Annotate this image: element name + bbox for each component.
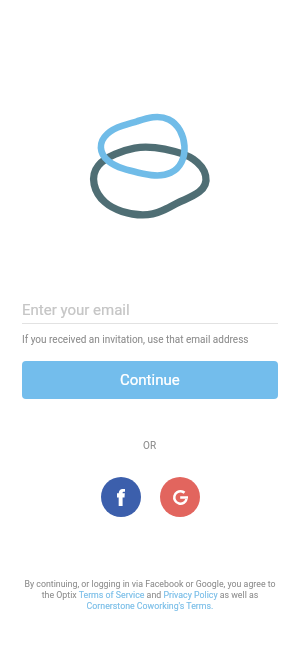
button[interactable]: Enter your email xyxy=(22,297,278,323)
staticText: By continuing, or logging in via Faceboo… xyxy=(21,579,279,611)
button[interactable]: By continuing, or logging in via Faceboo… xyxy=(21,579,279,611)
staticText: Enter your email xyxy=(22,301,130,319)
button[interactable]: Continue with Google xyxy=(160,477,200,517)
button[interactable]: Continue xyxy=(22,361,278,399)
staticText: OR xyxy=(143,440,157,452)
button[interactable]: Continue with Facebook xyxy=(101,477,141,517)
staticText: If you received an invitation, use that … xyxy=(22,334,249,346)
staticText: Continue xyxy=(120,371,180,389)
